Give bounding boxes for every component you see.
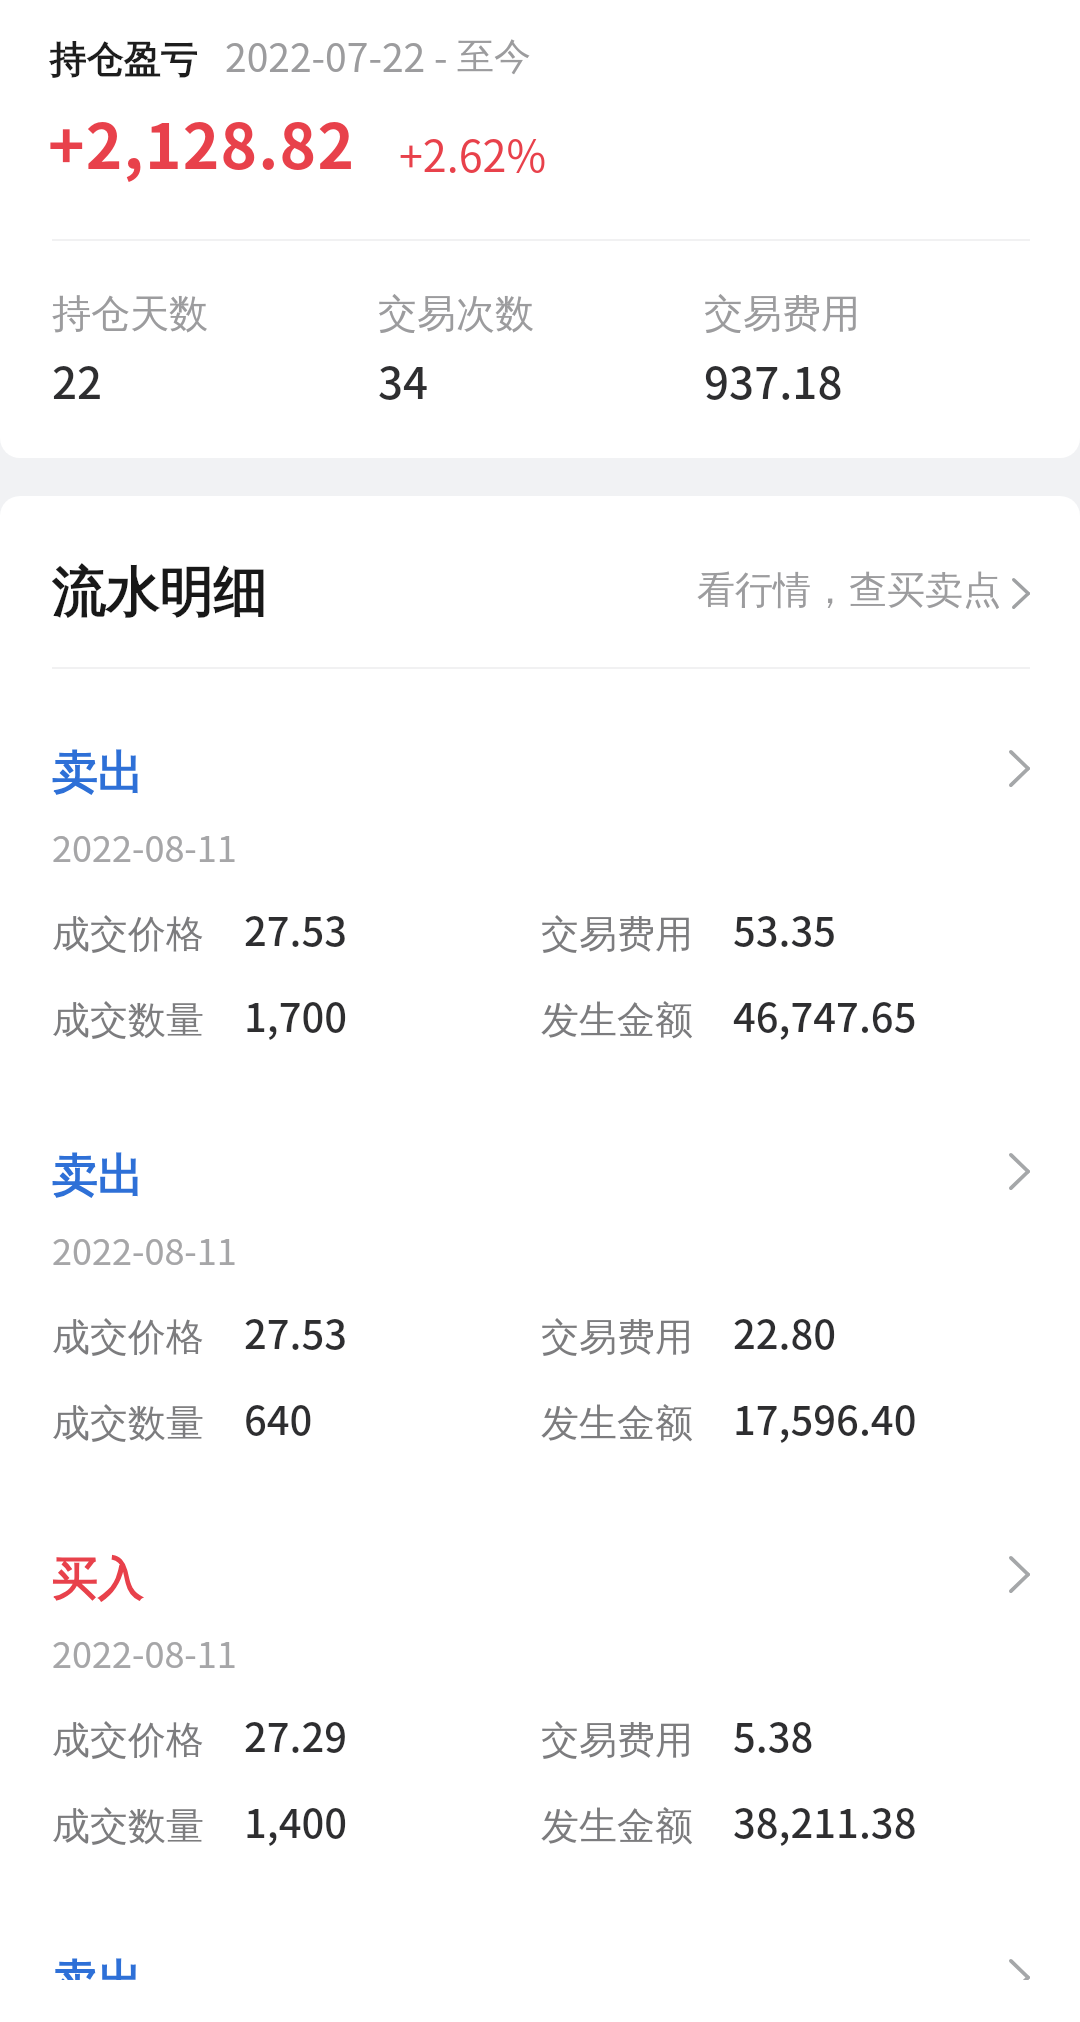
staticText: 发生金额: [541, 996, 693, 1044]
staticText: 成交数量: [52, 1399, 204, 1447]
staticText: 937.18: [704, 348, 843, 412]
staticText: 46,747.65: [733, 986, 917, 1044]
button[interactable]: 卖出: [0, 1117, 1080, 1520]
other: 查看明细: [1009, 1959, 1030, 1996]
staticText: 成交价格: [52, 1313, 204, 1361]
staticText: 发生金额: [541, 1802, 693, 1850]
staticText: 2022-07-22 -: [225, 27, 457, 83]
staticText: 至今: [457, 33, 531, 80]
staticText: 2022-08-11: [52, 1626, 237, 1678]
button[interactable]: 卖出: [0, 1923, 1080, 2022]
button[interactable]: 卖出: [0, 714, 1080, 1117]
staticText: 成交数量: [52, 1802, 204, 1850]
staticText: +2,128.82: [48, 97, 356, 187]
staticText: 22: [52, 348, 103, 412]
staticText: 交易费用: [541, 1716, 693, 1764]
staticText: 34: [378, 348, 429, 412]
staticText: 17,596.40: [733, 1389, 917, 1447]
staticText: 27.29: [244, 1706, 348, 1764]
staticText: 2022-08-11: [52, 820, 237, 872]
staticText: 持仓天数: [52, 289, 208, 338]
staticText: 27.53: [244, 900, 348, 958]
staticText: 1,400: [244, 1792, 348, 1850]
staticText: 成交数量: [52, 996, 204, 1044]
staticText: 2022-08-11: [52, 1223, 237, 1275]
staticText: 买入: [52, 1550, 144, 1608]
staticText: 看行情，查买卖点: [697, 566, 1001, 614]
staticText: 22.80: [733, 1303, 837, 1361]
staticText: 交易费用: [541, 1313, 693, 1361]
staticText: 53.35: [733, 900, 837, 958]
staticText: 成交价格: [52, 910, 204, 958]
other: 查看明细: [1009, 1556, 1030, 1593]
staticText: 27.53: [244, 1303, 348, 1361]
button[interactable]: 买入: [0, 1520, 1080, 1923]
other: 查看明细: [1009, 750, 1030, 787]
staticText: 1,700: [244, 986, 348, 1044]
staticText: 交易次数: [378, 289, 534, 338]
button[interactable]: 看行情，查买卖点: [697, 566, 1030, 614]
staticText: 卖出: [52, 1953, 144, 2011]
staticText: +2.62%: [399, 122, 547, 184]
staticText: 卖出: [52, 744, 144, 802]
staticText: 流水明细: [52, 558, 268, 622]
staticText: 5.38: [733, 1706, 814, 1764]
staticText: 发生金额: [541, 1399, 693, 1447]
staticText: 成交价格: [52, 1716, 204, 1764]
staticText: 卖出: [52, 1147, 144, 1205]
staticText: 交易费用: [704, 289, 860, 338]
staticText: 持仓盈亏: [50, 36, 198, 83]
other: 查看明细: [1009, 1153, 1030, 1190]
staticText: 38,211.38: [733, 1792, 917, 1850]
staticText: 交易费用: [541, 910, 693, 958]
staticText: 640: [244, 1389, 313, 1447]
